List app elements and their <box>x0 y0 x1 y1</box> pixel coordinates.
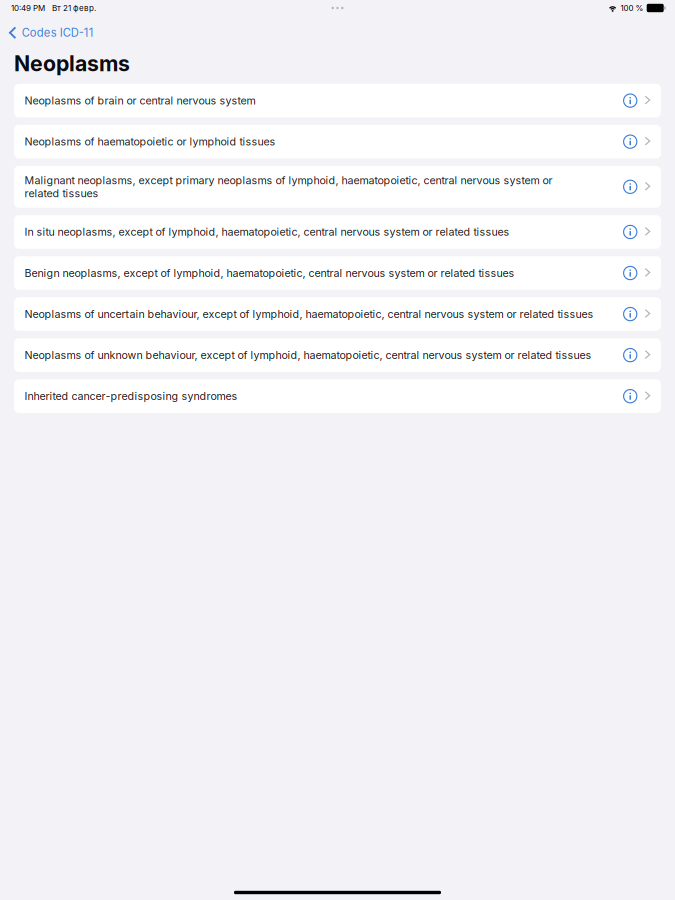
button[interactable]: Neoplasms of unknown behaviour, except o… <box>14 338 661 372</box>
staticText: 100 % <box>620 3 643 13</box>
staticText: 10:49 PM <box>11 3 45 13</box>
button[interactable]: More information about Neoplasms of haem… <box>623 134 637 149</box>
button[interactable]: Inherited cancer-predisposing syndromes <box>14 379 661 413</box>
button[interactable]: More information about Neoplasms of unce… <box>623 307 637 321</box>
button[interactable]: Codes ICD-11 <box>0 22 102 44</box>
staticText: Malignant neoplasms, except primary neop… <box>24 174 552 200</box>
button[interactable]: Malignant neoplasms, except primary neop… <box>14 166 661 208</box>
button[interactable]: More information about Benign neoplasms,… <box>623 266 637 280</box>
button[interactable]: Neoplasms of haematopoietic or lymphoid … <box>14 125 661 158</box>
button[interactable]: More information about In situ neoplasms… <box>623 225 637 239</box>
button[interactable]: More information about Neoplasms of brai… <box>623 93 637 108</box>
staticText: Вт 21 февр. <box>52 3 96 13</box>
button[interactable]: More information about Neoplasms of unkn… <box>623 348 637 362</box>
button[interactable]: In situ neoplasms, except of lymphoid, h… <box>14 215 661 249</box>
staticText: Inherited cancer-predisposing syndromes <box>24 390 237 403</box>
button[interactable]: More information about Malignant neoplas… <box>623 180 637 194</box>
staticText: Neoplasms of uncertain behaviour, except… <box>24 308 593 320</box>
staticText: In situ neoplasms, except of lymphoid, h… <box>24 225 509 238</box>
button[interactable]: More information about Inherited cancer-… <box>623 389 637 403</box>
staticText: Codes ICD-11 <box>22 26 94 40</box>
staticText: Neoplasms of haematopoietic or lymphoid … <box>24 135 275 148</box>
button[interactable]: Neoplasms of uncertain behaviour, except… <box>14 297 661 331</box>
button[interactable]: Neoplasms of brain or central nervous sy… <box>14 84 661 117</box>
staticText: Neoplasms of unknown behaviour, except o… <box>24 349 591 362</box>
button[interactable]: Benign neoplasms, except of lymphoid, ha… <box>14 256 661 290</box>
staticText: Neoplasms <box>14 50 130 76</box>
staticText: Benign neoplasms, except of lymphoid, ha… <box>24 267 514 279</box>
staticText: Neoplasms of brain or central nervous sy… <box>24 94 255 107</box>
